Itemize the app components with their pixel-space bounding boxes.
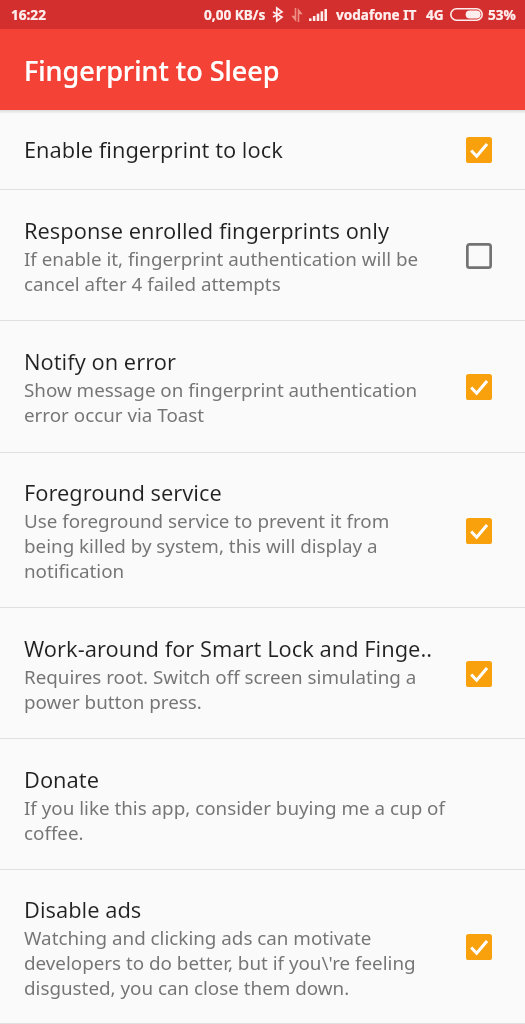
button[interactable]: Notify on error, checked bbox=[466, 374, 492, 400]
button[interactable]: Foreground service, checked bbox=[466, 518, 492, 544]
button[interactable]: Enable fingerprint to lock, checked bbox=[466, 137, 492, 163]
staticText: Disable ads bbox=[24, 895, 142, 925]
staticText: Fingerprint to Sleep bbox=[24, 52, 280, 89]
staticText: Foreground service bbox=[24, 478, 222, 508]
button[interactable]: Enable fingerprint to lock bbox=[0, 110, 525, 190]
staticText: If you like this app, consider buying me… bbox=[24, 795, 445, 845]
staticText: Show message on fingerprint authenticati… bbox=[24, 377, 418, 427]
button[interactable]: Response enrolled fingerprints only, not… bbox=[466, 243, 492, 269]
staticText: Notify on error bbox=[24, 347, 176, 377]
staticText: 0,00 KB/s bbox=[204, 5, 266, 24]
button[interactable]: Work-around for Smart Lock and Finge.. bbox=[0, 608, 525, 739]
button[interactable]: Response enrolled fingerprints only bbox=[0, 190, 525, 321]
button[interactable]: Disable ads bbox=[0, 870, 525, 1024]
staticText: 53% bbox=[488, 5, 516, 24]
button[interactable]: Donate bbox=[0, 739, 525, 870]
button[interactable]: Work-around for Smart Lock and Finge.., … bbox=[466, 661, 492, 687]
staticText: Response enrolled fingerprints only bbox=[24, 216, 390, 246]
button[interactable]: Foreground service bbox=[0, 453, 525, 608]
staticText: 4G bbox=[426, 5, 444, 24]
staticText: Requires root. Switch off screen simulat… bbox=[24, 664, 417, 714]
staticText: 16:22 bbox=[11, 5, 46, 24]
button[interactable]: Notify on error bbox=[0, 321, 525, 453]
staticText: If enable it, fingerprint authentication… bbox=[24, 246, 419, 296]
staticText: Watching and clicking ads can motivate d… bbox=[24, 925, 416, 1000]
staticText: Work-around for Smart Lock and Finge.. bbox=[24, 634, 433, 664]
button[interactable]: Disable ads, checked bbox=[466, 934, 492, 960]
staticText: vodafone IT bbox=[336, 5, 417, 24]
staticText: Enable fingerprint to lock bbox=[24, 135, 283, 165]
staticText: Donate bbox=[24, 765, 99, 795]
staticText: Use foreground service to prevent it fro… bbox=[24, 508, 390, 583]
